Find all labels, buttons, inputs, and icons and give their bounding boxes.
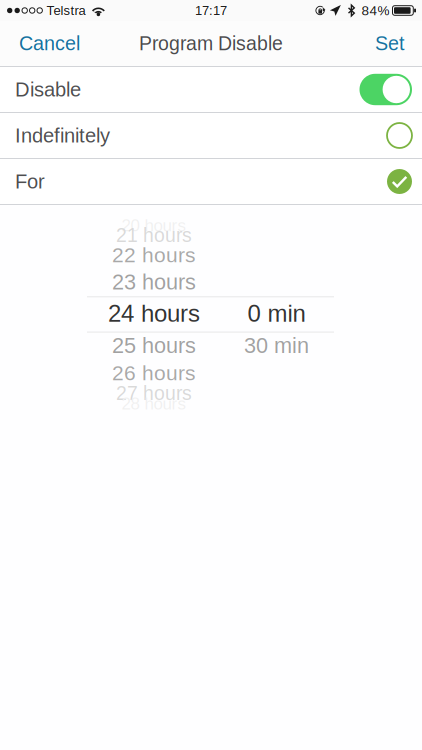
staticText: For [15, 170, 45, 193]
staticText: Program Disable [139, 33, 283, 54]
staticText: Disable [15, 78, 81, 101]
button[interactable]: Set [363, 22, 422, 64]
staticText: 28 hours [121, 394, 186, 413]
staticText: 27 hours [116, 382, 192, 404]
staticText: 22 hours [112, 243, 196, 267]
staticText: 30 min [244, 333, 309, 357]
staticText: 17:17 [195, 3, 227, 18]
staticText: Indefinitely [15, 124, 110, 147]
staticText: 25 hours [112, 333, 196, 357]
staticText: 24 hours [108, 300, 200, 327]
staticText: 21 hours [116, 224, 192, 246]
staticText: 23 hours [112, 270, 196, 294]
staticText: Set [375, 32, 404, 54]
staticText: 84% [361, 3, 389, 18]
button[interactable]: Indefinitely [0, 113, 422, 158]
staticText: Cancel [19, 32, 80, 54]
button[interactable]: Cancel [0, 22, 92, 64]
staticText: 20 hours [121, 216, 186, 235]
button[interactable]: Disable [0, 67, 422, 112]
staticText: Telstra [46, 3, 85, 18]
staticText: 26 hours [112, 361, 196, 385]
button[interactable]: For [0, 159, 422, 204]
staticText: 0 min [247, 300, 305, 327]
